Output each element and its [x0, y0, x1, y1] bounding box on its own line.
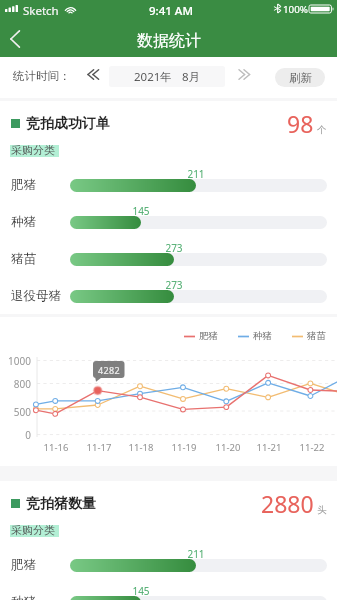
- staticText: 肥猪: [11, 557, 36, 573]
- staticText: 145: [121, 584, 161, 598]
- staticText: 273: [154, 278, 194, 292]
- staticText: 11-20: [208, 441, 248, 454]
- staticText: 数据统计: [137, 31, 201, 51]
- staticText: 11-17: [79, 441, 119, 454]
- button[interactable]: 2021年: [109, 66, 225, 87]
- staticText: 头: [317, 504, 327, 516]
- staticText: 211: [176, 547, 216, 561]
- staticText: 145: [121, 204, 161, 218]
- staticText: 0: [0, 428, 31, 442]
- staticText: 统计时间：: [13, 69, 71, 83]
- staticText: 种猪: [253, 330, 272, 342]
- staticText: 11-19: [164, 441, 204, 454]
- staticText: 98: [287, 108, 314, 139]
- staticText: 11-16: [36, 441, 76, 454]
- staticText: 2021年: [134, 69, 172, 85]
- staticText: 800: [0, 377, 31, 391]
- staticText: 9:41 AM: [149, 3, 193, 19]
- staticText: 个: [317, 124, 327, 136]
- staticText: 100%: [283, 3, 308, 16]
- staticText: 211: [176, 167, 216, 181]
- button[interactable]: Back: [0, 22, 30, 56]
- staticText: 猪苗: [11, 251, 36, 267]
- button[interactable]: Previous month: [83, 64, 103, 84]
- staticText: 1000: [0, 354, 31, 368]
- staticText: 2880: [261, 488, 314, 519]
- staticText: 种猪: [11, 214, 36, 230]
- staticText: Sketch: [23, 3, 59, 19]
- staticText: 肥猪: [199, 330, 218, 342]
- staticText: 竞拍成功订单: [26, 115, 110, 133]
- staticText: 采购分类: [11, 523, 55, 537]
- button[interactable]: Next month: [234, 64, 254, 84]
- staticText: 273: [154, 241, 194, 255]
- staticText: 4282: [93, 364, 125, 376]
- staticText: 500: [0, 405, 31, 419]
- button[interactable]: 刷新: [275, 68, 325, 87]
- staticText: 种猪: [11, 594, 36, 600]
- staticText: 猪苗: [307, 330, 326, 342]
- staticText: 8月: [182, 69, 201, 85]
- staticText: 刷新: [289, 71, 312, 85]
- staticText: 11-18: [121, 441, 161, 454]
- staticText: 退役母猪: [11, 288, 61, 304]
- staticText: 竞拍猪数量: [26, 495, 96, 513]
- staticText: 采购分类: [11, 143, 55, 157]
- staticText: 肥猪: [11, 177, 36, 193]
- staticText: 11-22: [292, 441, 332, 454]
- staticText: 11-21: [249, 441, 289, 454]
